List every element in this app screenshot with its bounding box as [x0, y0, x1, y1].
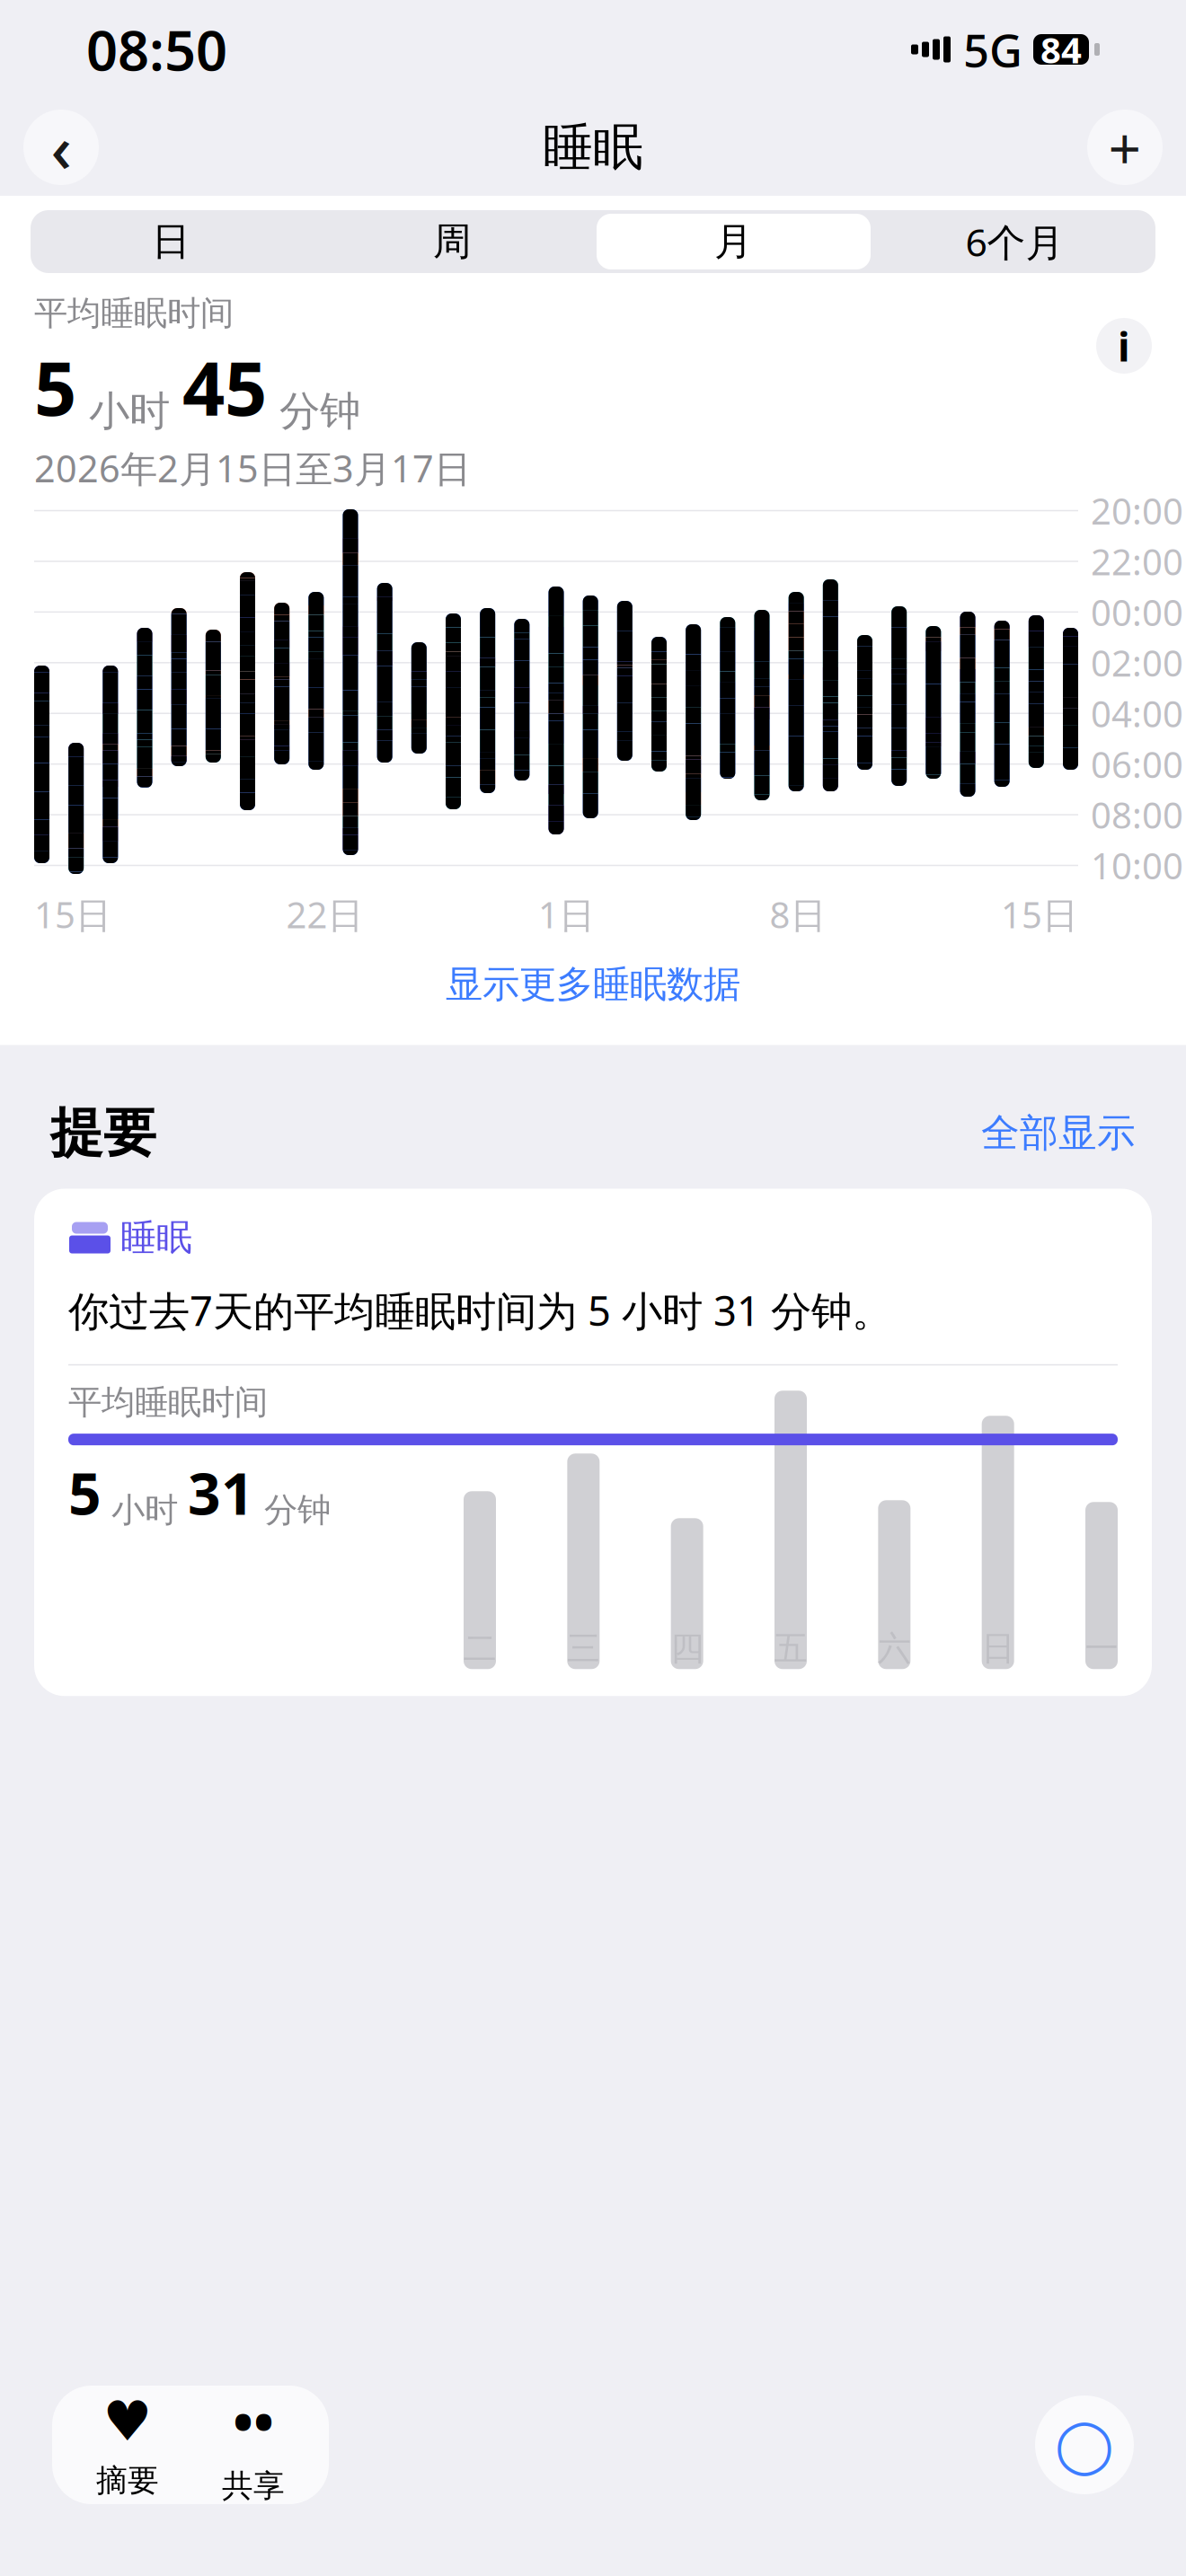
staticText: 分钟 [254, 1489, 331, 1531]
button[interactable]: 搜索 [1035, 2395, 1134, 2494]
staticText: 全部显示 [981, 1109, 1136, 1157]
staticText: 8日 [770, 891, 826, 938]
button[interactable]: 月 [593, 210, 874, 273]
staticText: 06:00 [1091, 740, 1183, 788]
staticText: 睡眠 [543, 116, 643, 178]
staticText: ♥ [103, 2390, 152, 2452]
staticText: 分钟 [267, 386, 360, 436]
staticText: 10:00 [1091, 842, 1183, 889]
staticText: 6个月 [965, 216, 1064, 267]
button[interactable]: 睡眠 [34, 1189, 1152, 1696]
staticText: 五 [774, 1628, 807, 1669]
button[interactable]: 全部显示 [981, 1109, 1136, 1157]
button[interactable]: 日 [31, 210, 312, 273]
staticText: 20:00 [1091, 487, 1183, 535]
staticText: 提要 [50, 1101, 156, 1165]
button[interactable]: •• [190, 2386, 316, 2504]
staticText: 08:50 [86, 13, 227, 86]
staticText: 周 [433, 218, 472, 265]
staticText: 小时 [102, 1489, 188, 1531]
staticText: 08:00 [1091, 791, 1183, 839]
staticText: 摘要 [96, 2461, 159, 2500]
staticText: 45 [182, 338, 267, 436]
staticText: 5G [963, 19, 1022, 80]
staticText: 四 [670, 1628, 704, 1669]
staticText: i [1118, 319, 1130, 373]
staticText: 04:00 [1091, 690, 1183, 737]
staticText: 三 [567, 1628, 600, 1669]
staticText: 一 [1085, 1628, 1118, 1669]
staticText: 22日 [286, 891, 363, 938]
staticText: 02:00 [1091, 639, 1183, 686]
button[interactable]: 添加数据 [1087, 110, 1163, 185]
staticText: 15日 [1001, 891, 1078, 938]
button[interactable]: 返回 [23, 110, 99, 185]
button[interactable]: ♥ [65, 2386, 190, 2504]
staticText: 二 [463, 1628, 496, 1669]
staticText: 睡眠 [120, 1216, 192, 1260]
staticText: 显示更多睡眠数据 [446, 962, 740, 1007]
staticText: 1日 [538, 891, 595, 938]
staticText: •• [233, 2385, 274, 2458]
button[interactable]: 信息 [1096, 318, 1152, 374]
staticText: 六 [878, 1628, 911, 1669]
staticText: 31 [188, 1454, 254, 1531]
staticText: 22:00 [1091, 537, 1183, 585]
staticText: ◯ [1055, 2415, 1114, 2475]
staticText: 月 [714, 218, 753, 265]
staticText: 15日 [34, 891, 111, 938]
staticText: 84 [1040, 26, 1082, 73]
staticText: 平均睡眠时间 [68, 1382, 268, 1423]
staticText: 平均睡眠时间 [34, 293, 234, 334]
button[interactable]: 周 [312, 210, 593, 273]
button[interactable]: 6个月 [874, 210, 1155, 273]
staticText: 日 [981, 1628, 1015, 1669]
staticText: 日 [152, 218, 190, 265]
staticText: 共享 [222, 2467, 285, 2505]
staticText: + [1108, 109, 1142, 185]
staticText: 00:00 [1091, 588, 1183, 636]
button[interactable]: 显示更多睡眠数据 [0, 938, 1186, 1031]
staticText: 5 [34, 338, 76, 436]
staticText: 2026年2月15日至3月17日 [34, 443, 471, 493]
staticText: 5 [68, 1454, 102, 1531]
staticText: 小时 [76, 386, 182, 436]
staticText: ‹ [51, 104, 71, 190]
staticText: 你过去7天的平均睡眠时间为 5 小时 31 分钟。 [68, 1283, 892, 1337]
